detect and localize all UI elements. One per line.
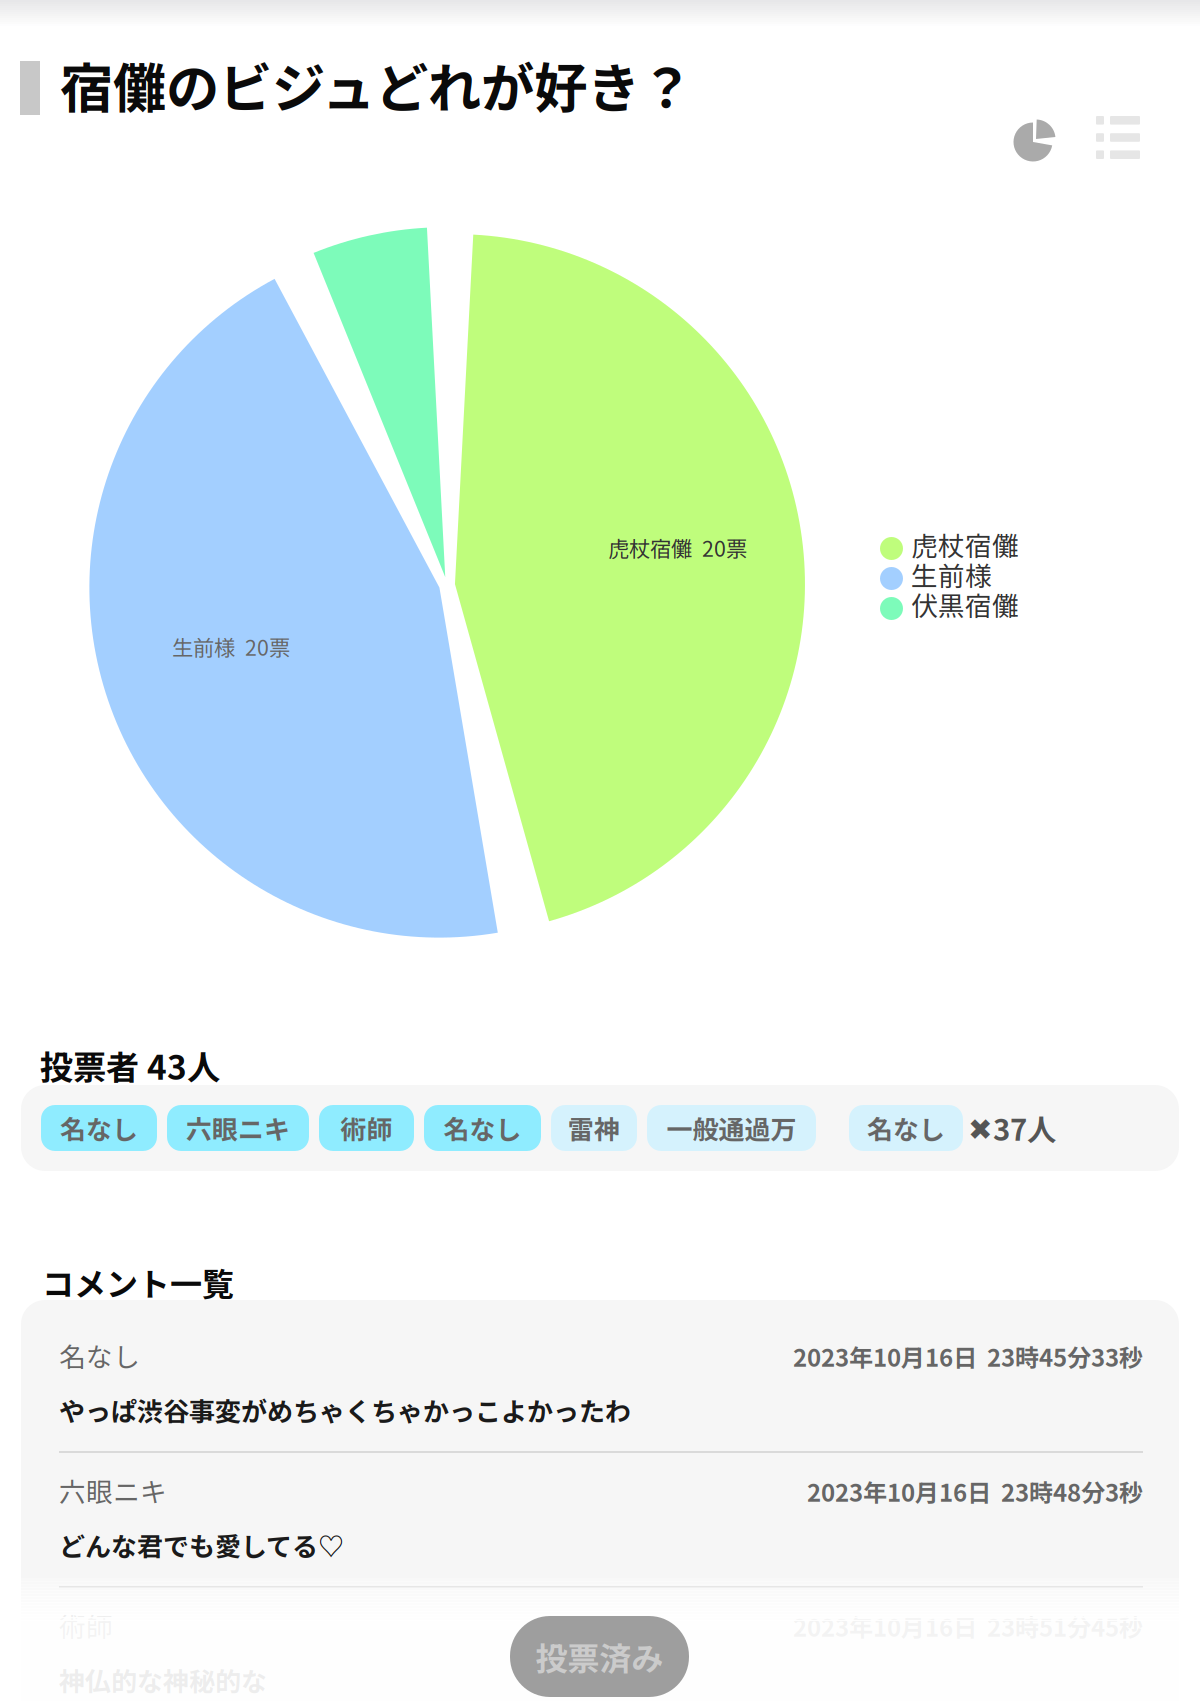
staticText: ✖37人	[968, 1107, 1056, 1149]
staticText: 六眼ニキ	[186, 1109, 290, 1147]
staticText: コメント一覧	[42, 1259, 234, 1305]
button[interactable]: 円グラフ表示	[1005, 112, 1057, 166]
staticText: 投票者 43人	[40, 1041, 220, 1089]
staticText: 名なし	[443, 1109, 521, 1147]
staticText: 投票済み	[535, 1633, 663, 1680]
button[interactable]: 投票済み	[510, 1616, 689, 1697]
staticText: 雷神	[568, 1109, 620, 1147]
staticText: 2023年10月16日 23時51分45秒	[793, 1609, 1143, 1644]
staticText: 2023年10月16日 23時48分3秒	[807, 1474, 1143, 1509]
staticText: どんな君でも愛してる♡	[59, 1526, 344, 1564]
staticText: 虎杖宿儺 20票	[608, 532, 747, 563]
button[interactable]: 名なし	[41, 1105, 157, 1151]
button[interactable]: 名なし	[424, 1105, 541, 1151]
staticText: 2023年10月16日 23時45分33秒	[793, 1339, 1143, 1374]
button[interactable]: 一般通過万	[647, 1105, 816, 1151]
button[interactable]: 名なし	[849, 1105, 963, 1151]
staticText: 術師	[59, 1606, 113, 1645]
button[interactable]: リスト表示	[1096, 116, 1140, 158]
staticText: 名なし	[60, 1109, 138, 1147]
staticText: 虎杖宿儺	[911, 525, 1019, 564]
button[interactable]: 術師	[319, 1105, 414, 1151]
staticText: 術師	[340, 1109, 392, 1147]
staticText: 名なし	[867, 1109, 945, 1147]
staticText: 一般通過万	[666, 1109, 796, 1147]
staticText: 生前様 20票	[172, 631, 290, 662]
staticText: 六眼ニキ	[59, 1471, 167, 1510]
staticText: 宿儺のビジュどれが好き？	[60, 46, 693, 123]
staticText: やっぱ渋谷事変がめちゃくちゃかっこよかったわ	[59, 1391, 631, 1429]
button[interactable]: 六眼ニキ	[167, 1105, 309, 1151]
staticText: 生前様	[911, 555, 992, 594]
staticText: 神仏的な神秘的な	[59, 1661, 267, 1699]
staticText: 伏黒宿儺	[911, 585, 1019, 624]
staticText: 名なし	[59, 1336, 140, 1375]
button[interactable]: 雷神	[551, 1105, 637, 1151]
